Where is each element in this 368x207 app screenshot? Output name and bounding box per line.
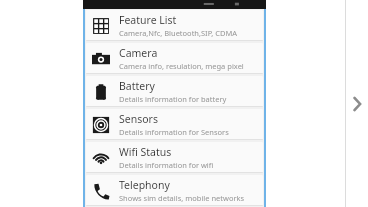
button[interactable]: Sensors xyxy=(86,109,263,140)
staticText: Battery xyxy=(119,79,155,93)
staticText: Feature List xyxy=(119,13,177,27)
staticText: Camera,Nfc, Bluetooth,SIP, CDMA xyxy=(119,28,237,38)
button[interactable]: Telephony xyxy=(86,175,263,206)
staticText: Sensors xyxy=(119,112,158,126)
staticText: Shows sim details, mobile networks xyxy=(119,193,245,203)
staticText: Details information for Sensors xyxy=(119,127,229,137)
staticText: Details information for wifi xyxy=(119,160,214,170)
button[interactable]: Battery xyxy=(86,76,263,107)
button[interactable]: Camera xyxy=(86,43,263,74)
staticText: Camera xyxy=(119,46,158,60)
button[interactable]: Next xyxy=(346,0,368,207)
button[interactable]: Feature List xyxy=(86,10,263,41)
button[interactable]: Wifi Status xyxy=(86,142,263,173)
staticText: Details information for battery xyxy=(119,94,227,104)
staticText: Wifi Status xyxy=(119,145,172,159)
staticText: Camera info, resulation, mega pixel xyxy=(119,61,244,71)
staticText: Telephony xyxy=(119,178,170,192)
